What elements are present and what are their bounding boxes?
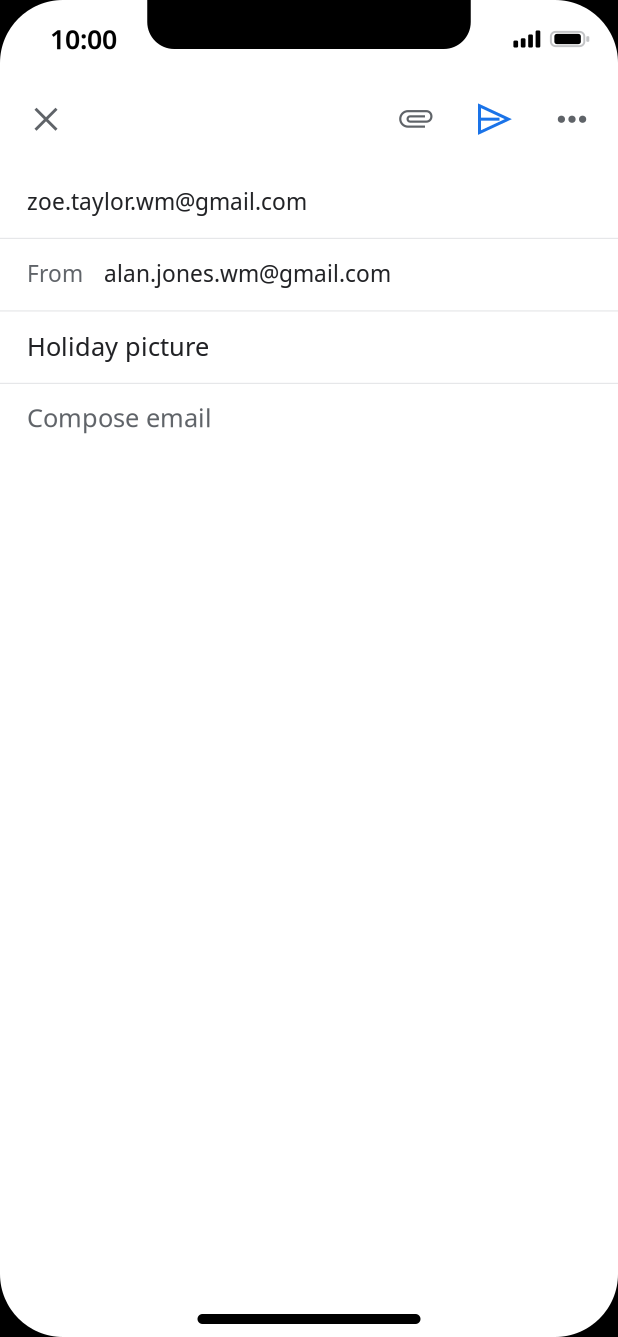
staticText: alan.jones.wm@gmail.com [104,258,391,288]
button[interactable]: Close [20,93,72,145]
button[interactable]: Holiday picture [0,311,618,384]
button[interactable]: zoe.taylor.wm@gmail.com [0,166,618,239]
button[interactable]: From [0,239,618,311]
staticText: Holiday picture [27,329,209,363]
button[interactable]: Send [468,93,520,145]
button[interactable]: More options [546,93,598,145]
button[interactable]: Compose email [0,384,618,456]
staticText: From [27,258,83,288]
staticText: 10:00 [50,21,117,57]
staticText: Compose email [27,401,212,434]
button[interactable]: Attach file [390,93,442,145]
staticText: zoe.taylor.wm@gmail.com [27,186,307,216]
